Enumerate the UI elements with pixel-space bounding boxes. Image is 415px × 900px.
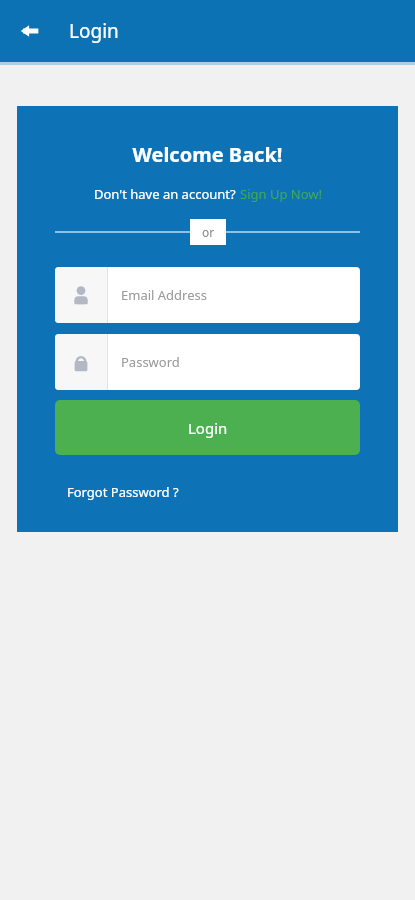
staticText: Don't have an account? [94, 185, 240, 203]
staticText: Login [188, 418, 228, 438]
staticText: Forgot Password ? [67, 483, 179, 501]
button[interactable]: Back [10, 11, 50, 51]
button[interactable]: Login [55, 400, 360, 455]
staticText: Sign Up Now! [240, 185, 322, 203]
button[interactable]: Email Address [55, 267, 360, 323]
button[interactable]: Forgot Password ? [65, 481, 181, 503]
staticText: Login [69, 18, 119, 44]
staticText: or [202, 224, 215, 240]
staticText: Email Address [121, 286, 207, 304]
button[interactable]: Sign Up Now! [240, 185, 322, 203]
button[interactable]: Password [55, 334, 360, 390]
staticText: Password [121, 353, 180, 371]
staticText: Welcome Back! [17, 141, 398, 168]
